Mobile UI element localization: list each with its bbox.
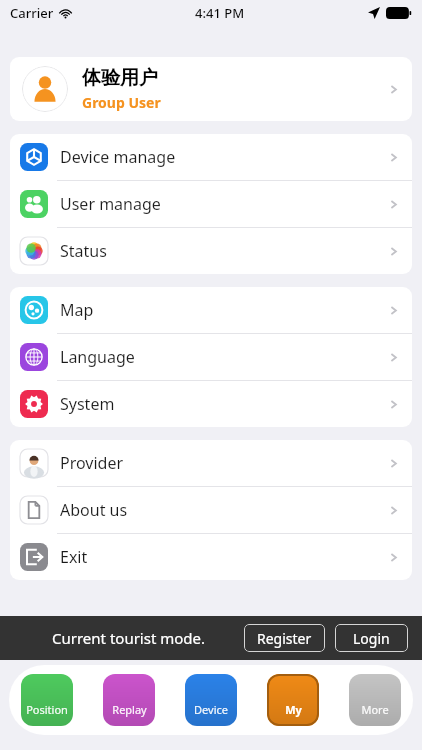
staticText: Register bbox=[257, 629, 312, 648]
button[interactable]: Exit bbox=[10, 534, 412, 580]
button[interactable]: System bbox=[10, 381, 412, 427]
button[interactable]: More bbox=[349, 674, 401, 726]
button[interactable]: About us bbox=[10, 487, 412, 534]
staticText: Position bbox=[26, 702, 68, 717]
staticText: Exit bbox=[60, 546, 88, 568]
staticText: Carrier bbox=[10, 4, 54, 22]
staticText: Login bbox=[353, 629, 390, 648]
button[interactable]: Status bbox=[10, 228, 412, 274]
button[interactable]: Replay bbox=[103, 674, 155, 726]
button[interactable]: Map bbox=[10, 287, 412, 334]
button[interactable]: Provider bbox=[10, 440, 412, 487]
staticText: User manage bbox=[60, 193, 161, 215]
staticText: About us bbox=[60, 499, 128, 521]
button[interactable]: User manage bbox=[10, 181, 412, 228]
staticText: My bbox=[285, 702, 302, 717]
staticText: More bbox=[361, 702, 389, 717]
staticText: 4:41 PM bbox=[195, 4, 245, 22]
button[interactable]: Position bbox=[21, 674, 73, 726]
staticText: System bbox=[60, 393, 115, 415]
button[interactable]: Device manage bbox=[10, 134, 412, 181]
button[interactable]: Login bbox=[335, 624, 408, 652]
staticText: Status bbox=[60, 240, 107, 262]
staticText: 体验用户 bbox=[82, 66, 158, 90]
button[interactable]: Device bbox=[185, 674, 237, 726]
button[interactable]: Language bbox=[10, 334, 412, 381]
staticText: Device manage bbox=[60, 146, 176, 168]
button[interactable]: Register bbox=[244, 624, 325, 652]
staticText: Provider bbox=[60, 452, 124, 474]
button[interactable]: My bbox=[267, 674, 319, 726]
staticText: Map bbox=[60, 299, 94, 321]
staticText: Replay bbox=[112, 702, 147, 717]
button[interactable]: 体验用户 bbox=[10, 57, 412, 121]
staticText: Group User bbox=[82, 93, 161, 112]
staticText: Current tourist mode. bbox=[52, 628, 206, 648]
staticText: Language bbox=[60, 346, 135, 368]
staticText: Device bbox=[194, 702, 228, 717]
